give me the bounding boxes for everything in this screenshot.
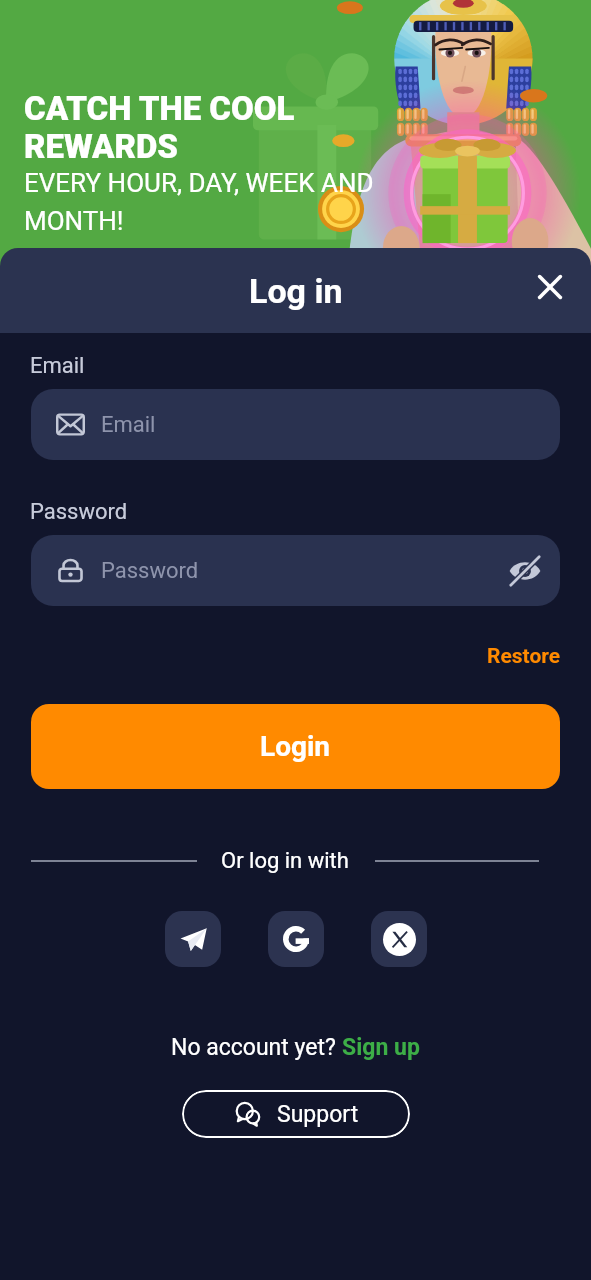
button[interactable]: Close xyxy=(526,263,574,311)
staticText: Log in xyxy=(249,271,343,311)
staticText: Sign up xyxy=(342,1034,420,1061)
staticText: Password xyxy=(30,499,128,525)
button[interactable]: Login xyxy=(31,704,560,789)
button[interactable]: Restore xyxy=(457,638,591,675)
button[interactable]: Support xyxy=(182,1090,410,1138)
button[interactable]: X xyxy=(371,911,427,967)
button[interactable]: Show password xyxy=(504,550,546,592)
button[interactable]: Sign up xyxy=(342,1034,420,1061)
staticText: Or log in with xyxy=(221,848,349,874)
staticText: EVERY HOUR, DAY, WEEK AND MONTH! xyxy=(24,168,374,236)
button[interactable]: Email xyxy=(31,389,560,460)
staticText: Login xyxy=(260,730,331,763)
staticText: Password xyxy=(101,558,504,584)
button[interactable]: Password xyxy=(31,535,560,606)
staticText: Restore xyxy=(487,644,561,669)
staticText: CATCH THE COOL REWARDS xyxy=(24,89,295,166)
button[interactable]: Telegram xyxy=(165,911,221,967)
staticText: No account yet? xyxy=(171,1034,342,1061)
staticText: Support xyxy=(277,1101,359,1128)
button[interactable]: Google xyxy=(268,911,324,967)
staticText: Email xyxy=(101,412,546,438)
staticText: Email xyxy=(30,353,85,379)
